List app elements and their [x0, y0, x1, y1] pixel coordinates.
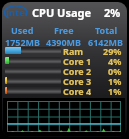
button[interactable]: Core 4: [2, 85, 127, 95]
staticText: Core 3: [63, 75, 92, 85]
staticText: Ram: [63, 45, 84, 55]
staticText: Core 1: [63, 55, 92, 65]
staticText: 6142MB: [88, 36, 124, 48]
staticText: Total: [95, 24, 118, 36]
staticText: 2%: [104, 5, 121, 20]
staticText: Used: [11, 24, 34, 36]
button[interactable]: Core 2: [2, 65, 127, 75]
button[interactable]: Ram: [2, 45, 127, 55]
button[interactable]: Core 1: [2, 55, 127, 65]
staticText: 1752MB: [5, 36, 41, 48]
staticText: 4%: [108, 55, 122, 65]
staticText: Core 4: [63, 85, 92, 95]
staticText: 4390MB: [46, 36, 82, 48]
staticText: intel: [6, 6, 28, 19]
staticText: 0%: [108, 65, 122, 75]
staticText: Free: [54, 24, 74, 36]
staticText: 1%: [108, 75, 122, 85]
staticText: CPU Usage: [32, 5, 92, 20]
button[interactable]: Intel: [2, 2, 127, 22]
other: Intel: [4, 5, 28, 20]
button[interactable]: Core 3: [2, 75, 127, 85]
staticText: 1%: [108, 85, 122, 95]
staticText: Core 2: [63, 65, 92, 75]
staticText: 29%: [103, 45, 122, 55]
